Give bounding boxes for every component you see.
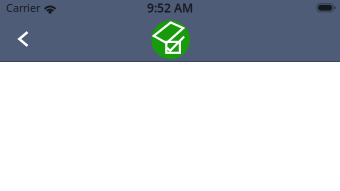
staticText: Carrier <box>6 1 40 15</box>
staticText: 9:52 AM <box>147 0 193 16</box>
button[interactable]: Back <box>0 20 42 61</box>
